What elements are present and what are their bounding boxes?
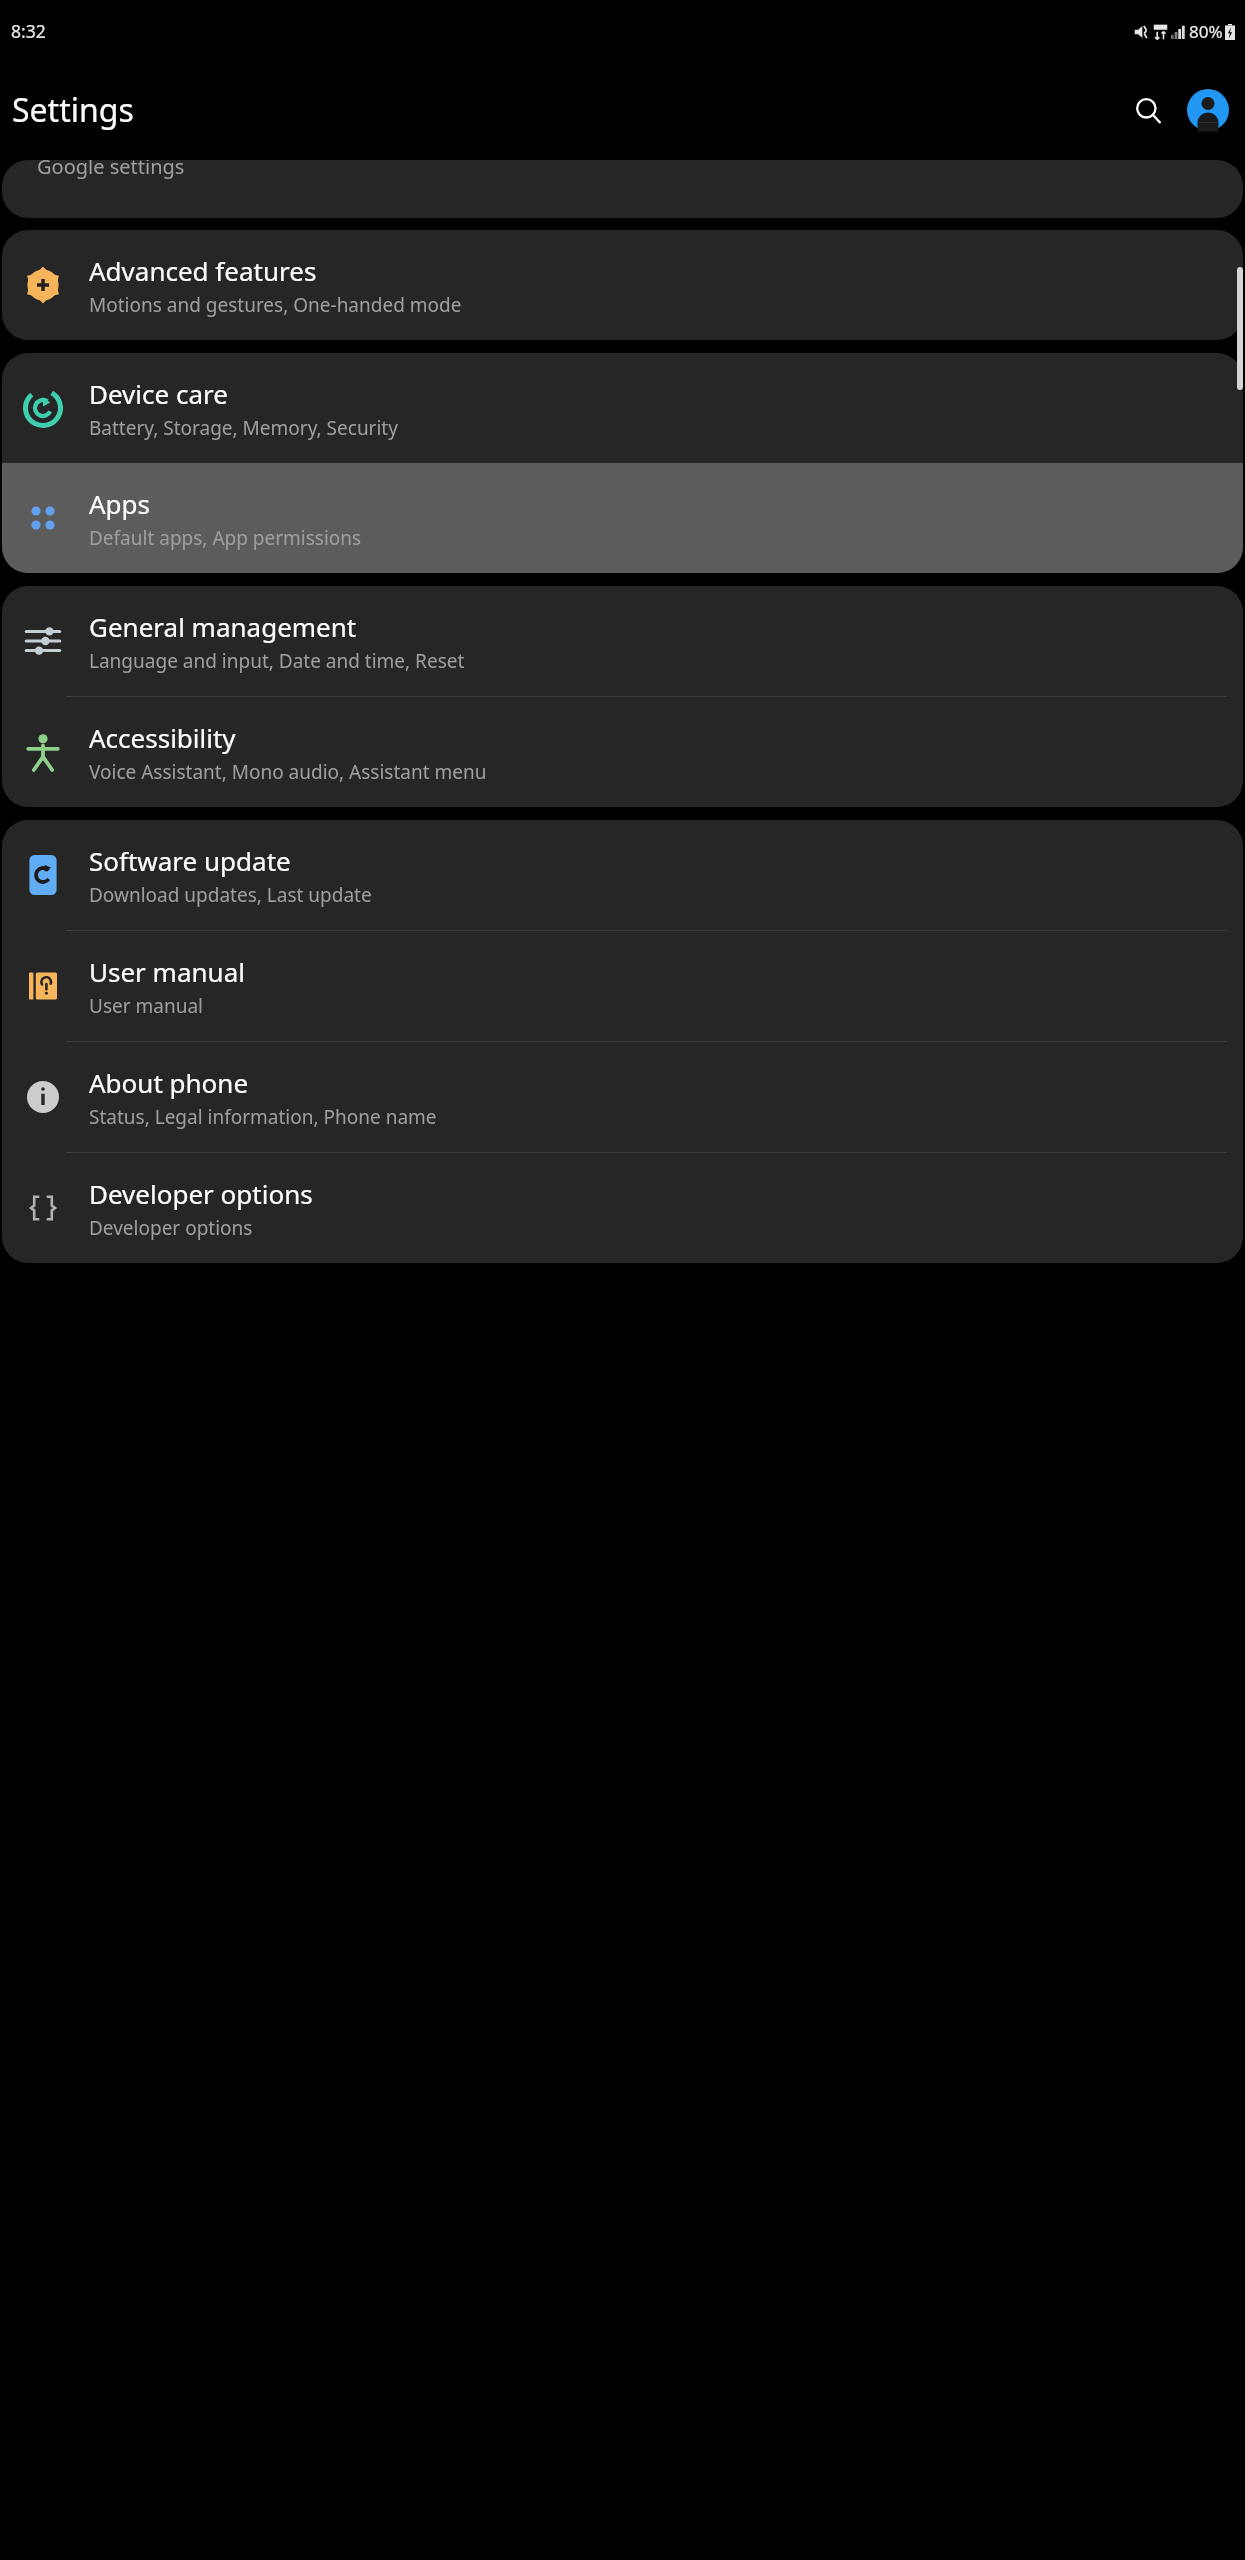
staticText: General management: [89, 609, 357, 644]
button[interactable]: Device care: [2, 353, 1243, 463]
button[interactable]: Apps: [2, 463, 1243, 573]
staticText: About phone: [89, 1065, 249, 1100]
staticText: Accessibility: [89, 720, 236, 755]
staticText: User manual: [89, 954, 245, 989]
staticText: Software update: [89, 843, 291, 878]
staticText: Google settings: [37, 160, 185, 180]
staticText: Apps: [89, 486, 151, 521]
staticText: Status, Legal information, Phone name: [89, 1104, 437, 1130]
staticText: Advanced features: [89, 253, 317, 288]
staticText: Battery, Storage, Memory, Security: [89, 415, 398, 441]
staticText: Default apps, App permissions: [89, 525, 362, 551]
button[interactable]: Advanced features: [2, 230, 1243, 340]
staticText: Download updates, Last update: [89, 882, 372, 908]
button[interactable]: About phone: [2, 1042, 1243, 1152]
staticText: Settings: [12, 88, 134, 132]
button[interactable]: General management: [2, 586, 1243, 696]
button[interactable]: User manual: [2, 931, 1243, 1041]
staticText: User manual: [89, 993, 203, 1019]
button[interactable]: Developer options: [2, 1153, 1243, 1263]
staticText: 80%: [1189, 20, 1223, 43]
staticText: Developer options: [89, 1176, 313, 1211]
staticText: Device care: [89, 376, 228, 411]
button[interactable]: Search settings: [1122, 84, 1174, 136]
staticText: Language and input, Date and time, Reset: [89, 648, 465, 674]
button[interactable]: Google settings: [2, 160, 1243, 218]
staticText: Voice Assistant, Mono audio, Assistant m…: [89, 759, 487, 785]
button[interactable]: Accessibility: [2, 697, 1243, 807]
button[interactable]: Account: [1182, 84, 1234, 136]
staticText: Developer options: [89, 1215, 253, 1241]
staticText: Motions and gestures, One-handed mode: [89, 292, 462, 318]
button[interactable]: Software update: [2, 820, 1243, 930]
staticText: 8:32: [11, 19, 46, 43]
